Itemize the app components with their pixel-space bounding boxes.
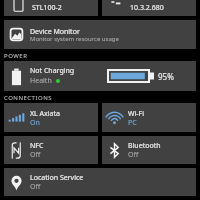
- button[interactable]: Device: [4, 0, 98, 16]
- staticText: STL100-2: [32, 3, 62, 13]
- button[interactable]: OS version: [102, 0, 196, 16]
- button[interactable]: Device Monitor: [4, 20, 196, 49]
- staticText: 10.3.2.680: [130, 3, 164, 13]
- staticText: Off: [30, 182, 41, 192]
- staticText: Monitor system resource usage: [30, 35, 119, 43]
- staticText: Wi-Fi: [128, 109, 145, 119]
- button[interactable]: Battery: [4, 61, 196, 91]
- other: Location Service: [8, 174, 25, 191]
- staticText: NFC: [30, 141, 44, 151]
- staticText: Not Charging: [30, 66, 75, 76]
- staticText: On: [30, 118, 40, 128]
- other: NFC: [8, 142, 25, 159]
- other: Mobile network: [8, 109, 25, 126]
- other: Wi-Fi: [106, 109, 123, 126]
- staticText: Bluetooth: [128, 141, 161, 151]
- staticText: Device Monitor: [30, 27, 80, 37]
- other: Bluetooth: [106, 142, 123, 159]
- staticText: POWER: [4, 52, 28, 60]
- other: Device Monitor: [8, 26, 25, 43]
- staticText: CONNECTIONS: [4, 94, 53, 102]
- staticText: Off: [30, 150, 41, 160]
- other: OS version: [109, 1, 124, 16]
- button[interactable]: Bluetooth: [102, 136, 196, 164]
- button[interactable]: Location Service: [4, 168, 196, 196]
- button[interactable]: Mobile network: [4, 103, 98, 132]
- other: Device: [11, 1, 26, 16]
- button[interactable]: NFC: [4, 136, 98, 164]
- staticText: XL Axiata: [30, 109, 60, 119]
- staticText: 95%: [158, 71, 174, 82]
- other: Battery: [8, 68, 25, 85]
- staticText: Location Service: [30, 173, 84, 183]
- staticText: PC: [128, 118, 137, 128]
- staticText: Health: [30, 76, 52, 86]
- button[interactable]: Wi-Fi: [102, 103, 196, 132]
- staticText: Off: [128, 150, 139, 160]
